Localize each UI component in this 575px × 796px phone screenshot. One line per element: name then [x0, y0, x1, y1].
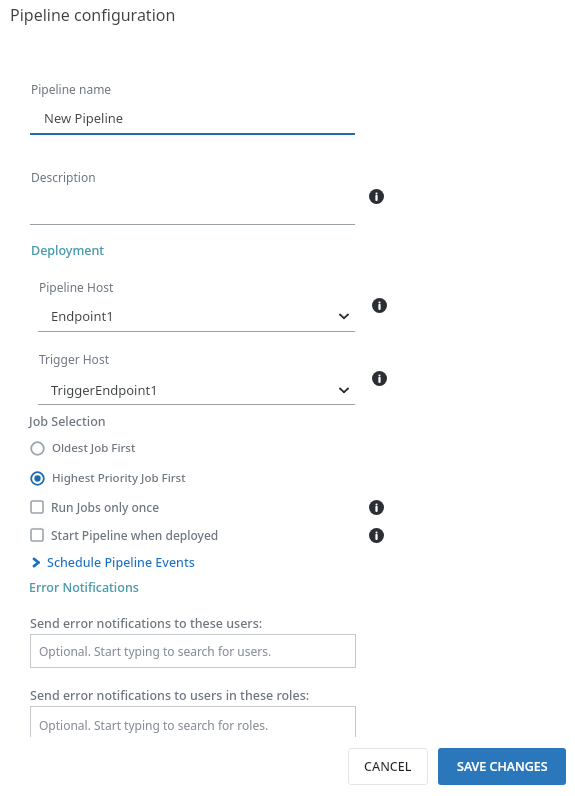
staticText: Trigger Host — [39, 351, 109, 367]
button[interactable]: More information — [368, 188, 384, 204]
staticText: Endpoint1 — [51, 307, 114, 325]
staticText: Pipeline name — [31, 81, 112, 97]
staticText: SAVE CHANGES — [457, 758, 548, 775]
staticText: Send error notifications to users in the… — [30, 687, 310, 704]
staticText: Pipeline configuration — [10, 4, 176, 26]
staticText: Send error notifications to these users: — [30, 615, 263, 632]
staticText: Optional. Start typing to search for rol… — [39, 717, 269, 733]
button[interactable]: SAVE CHANGES — [438, 748, 566, 785]
button[interactable]: More information — [368, 527, 384, 543]
button[interactable]: Endpoint1 — [38, 303, 355, 329]
button[interactable]: Start Pipeline when deployed — [30, 525, 280, 545]
button[interactable]: Oldest Job First — [30, 438, 250, 458]
staticText: Optional. Start typing to search for use… — [39, 643, 272, 659]
staticText: Deployment — [31, 242, 105, 259]
button[interactable]: TriggerEndpoint1 — [38, 377, 355, 403]
staticText: Job Selection — [29, 413, 106, 430]
staticText: TriggerEndpoint1 — [51, 381, 158, 399]
button[interactable]: Optional. Start typing to search for rol… — [30, 706, 356, 740]
staticText: CANCEL — [364, 758, 412, 775]
staticText: Start Pipeline when deployed — [51, 527, 219, 543]
button[interactable]: CANCEL — [348, 748, 428, 785]
button[interactable]: More information — [371, 297, 387, 313]
button[interactable]: Optional. Start typing to search for use… — [30, 634, 356, 668]
button[interactable]: New Pipeline — [30, 104, 355, 132]
button[interactable]: Schedule Pipeline Events — [30, 553, 195, 571]
button[interactable]: More information — [371, 370, 387, 386]
staticText: Pipeline Host — [39, 279, 114, 295]
staticText: Highest Priority Job First — [52, 470, 186, 486]
button[interactable]: Highest Priority Job First — [30, 468, 250, 488]
button[interactable]: Run Jobs only once — [30, 497, 280, 517]
staticText: Run Jobs only once — [51, 499, 160, 515]
staticText: Oldest Job First — [52, 440, 136, 456]
staticText: Error Notifications — [29, 579, 139, 596]
button[interactable]: More information — [368, 499, 384, 515]
staticText: Description — [31, 169, 96, 185]
staticText: Schedule Pipeline Events — [47, 554, 195, 571]
staticText: New Pipeline — [44, 109, 124, 127]
